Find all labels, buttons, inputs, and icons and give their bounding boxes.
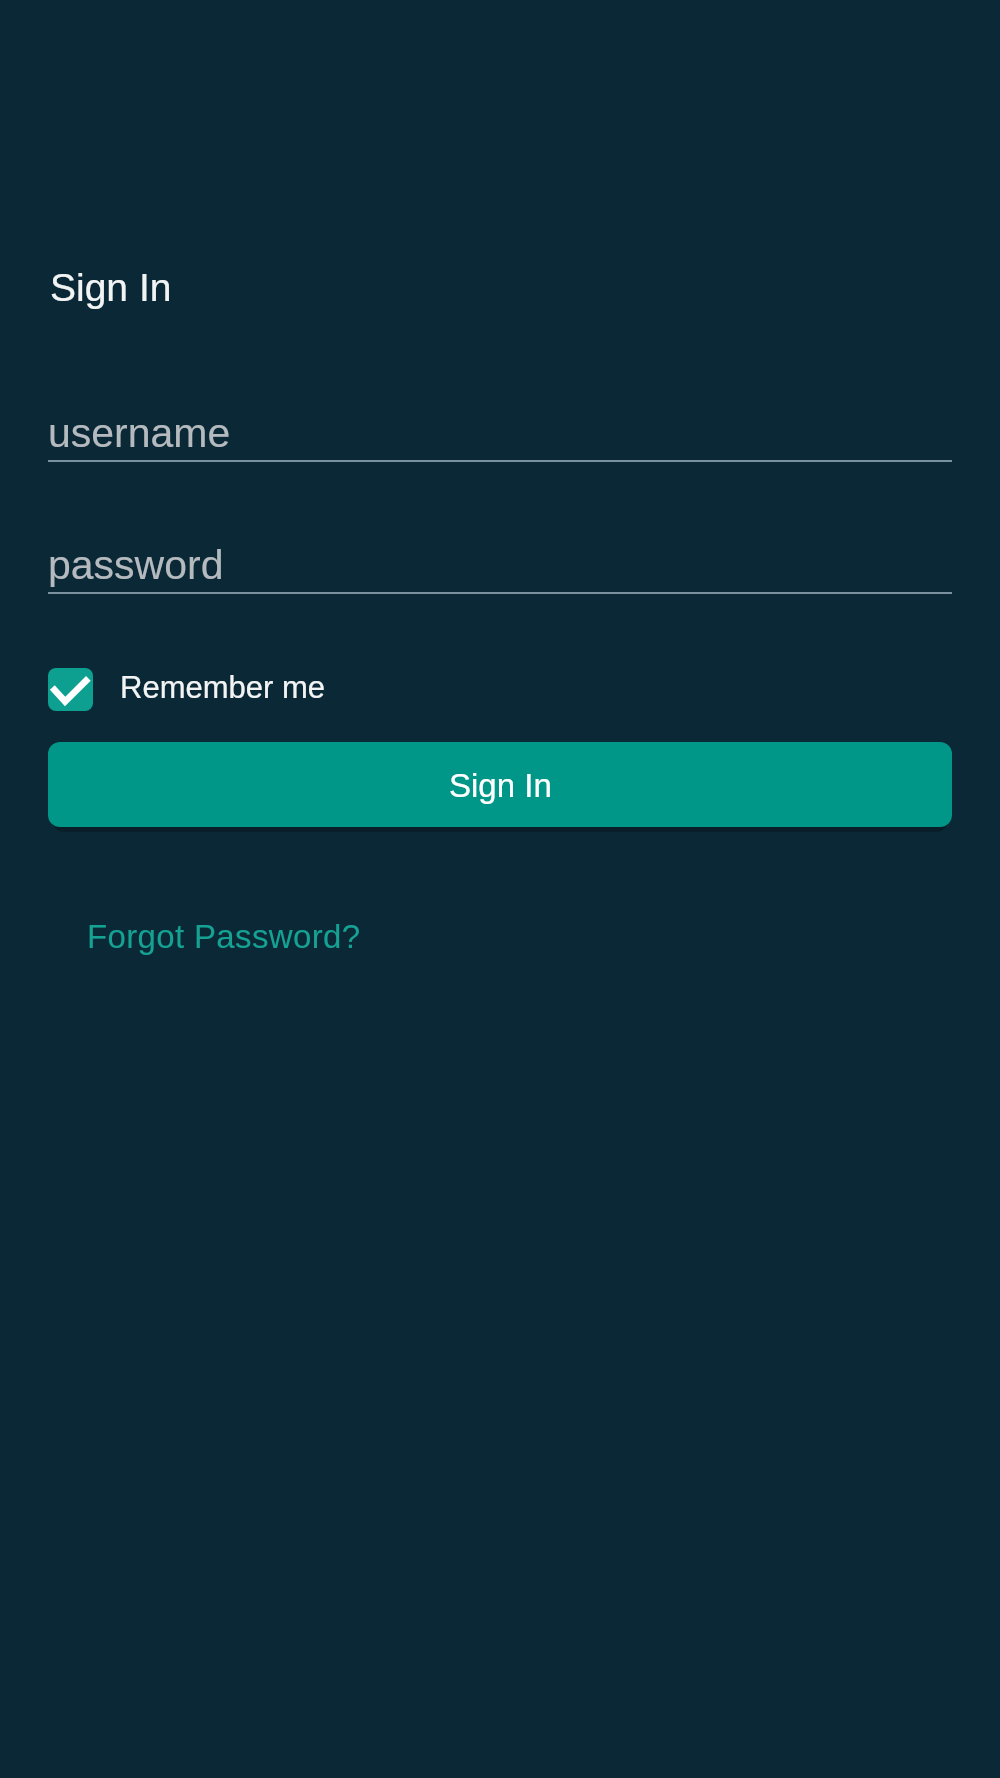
staticText: password: [48, 542, 224, 588]
staticText: Remember me: [120, 670, 325, 705]
button[interactable]: [48, 532, 952, 594]
button[interactable]: [48, 668, 93, 711]
staticText: username: [48, 410, 231, 456]
staticText: Sign In: [50, 266, 172, 310]
button[interactable]: [48, 400, 952, 462]
button[interactable]: Forgot Password?: [87, 918, 361, 955]
button[interactable]: Sign In: [48, 742, 952, 827]
staticText: Sign In: [449, 767, 552, 804]
